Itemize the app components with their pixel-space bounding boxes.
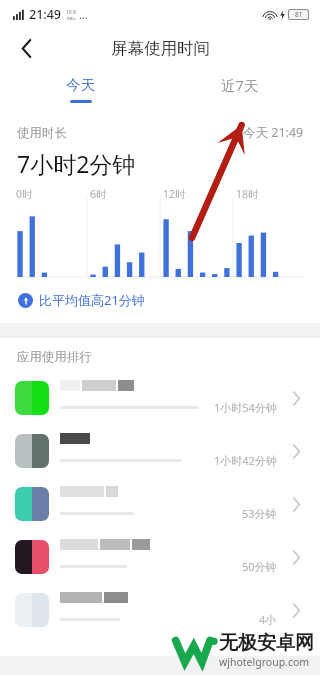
staticText: 81 [295, 10, 303, 19]
button[interactable]: 1小时42分钟 [0, 424, 320, 477]
staticText: 12时 [163, 187, 186, 201]
other: 查看详情 [285, 440, 307, 462]
staticText: 0时 [16, 187, 33, 201]
staticText: 无极安卓网 [219, 631, 314, 655]
staticText: … [79, 7, 88, 22]
staticText: 今天 [66, 76, 95, 94]
staticText: 7小时2分钟 [17, 148, 136, 179]
button[interactable]: 53分钟 [0, 477, 320, 530]
staticText: 应用使用排行 [17, 349, 92, 365]
staticText: 使用时长 [17, 125, 67, 141]
staticText: 4小 [259, 612, 277, 627]
staticText: wjhotelgroup.com [219, 655, 310, 669]
button[interactable]: 近7天 [160, 68, 320, 111]
staticText: 近7天 [221, 75, 259, 95]
staticText: KB/s [67, 16, 76, 21]
staticText: 1小时54分钟 [214, 400, 277, 415]
button[interactable]: 今天 [0, 68, 160, 111]
other: 查看详情 [285, 493, 307, 515]
staticText: 6时 [90, 187, 107, 201]
staticText: 今天 21:49 [243, 124, 304, 141]
button[interactable]: 返回 [8, 30, 44, 66]
other: 查看详情 [285, 387, 307, 409]
staticText: 10.9 [66, 9, 76, 16]
other: 查看详情 [285, 546, 307, 568]
button[interactable]: 4小 [0, 583, 320, 636]
staticText: 53分钟 [242, 506, 277, 521]
staticText: 18时 [236, 187, 259, 201]
staticText: 屏幕使用时间 [111, 38, 210, 59]
button[interactable]: 1小时54分钟 [0, 371, 320, 424]
staticText: 比平均值高21分钟 [39, 291, 145, 309]
button[interactable]: 50分钟 [0, 530, 320, 583]
other: 查看详情 [285, 599, 307, 621]
button[interactable]: 比平均值高21分钟 [16, 289, 147, 311]
staticText: 50分钟 [242, 559, 277, 574]
staticText: 21:49 [29, 6, 62, 23]
staticText: 1小时42分钟 [214, 453, 277, 468]
